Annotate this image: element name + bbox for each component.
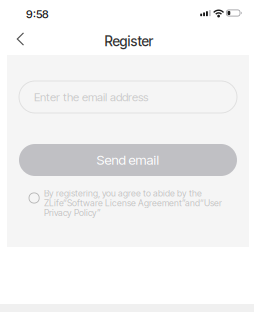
button[interactable]: Back — [0, 26, 43, 52]
button[interactable]: Send email — [19, 144, 237, 176]
staticText: Privacy Policy” — [44, 207, 101, 218]
staticText: By registering, you agree to abide by th… — [44, 188, 202, 199]
staticText: Enter the email address — [34, 90, 148, 104]
staticText: Send email — [96, 152, 159, 168]
staticText: 9:58 — [26, 7, 49, 21]
staticText: ZLife“Software License Agreement”and“Use… — [44, 198, 222, 208]
staticText: Register — [104, 33, 153, 49]
button[interactable]: Agree to the licence agreement — [19, 187, 44, 209]
